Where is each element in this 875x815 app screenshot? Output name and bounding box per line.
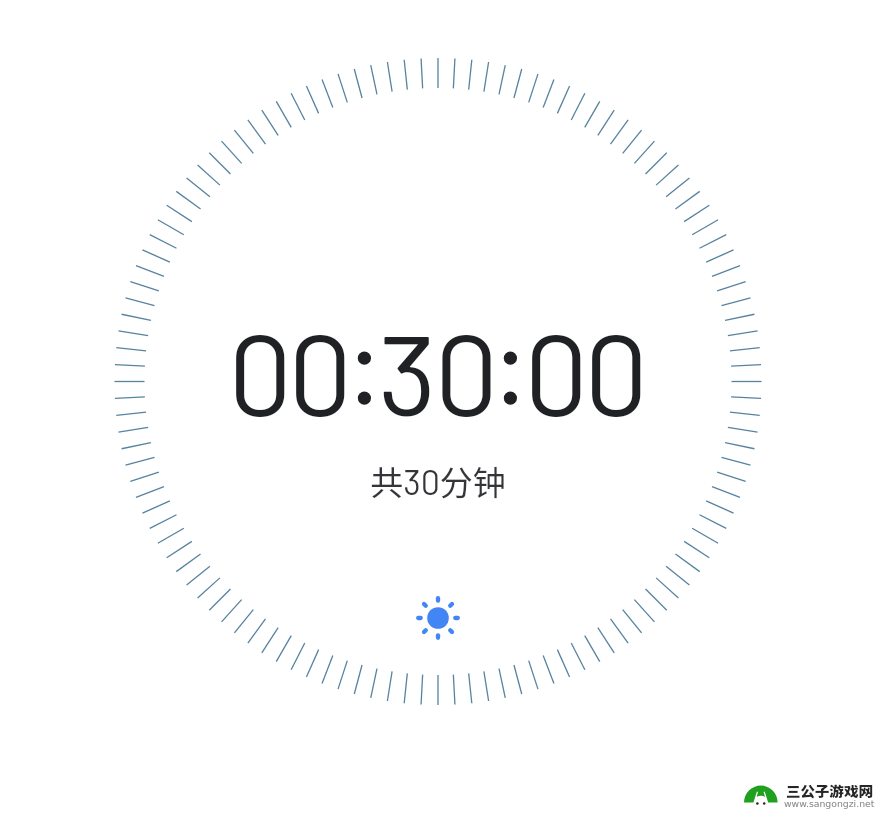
button[interactable]: 共30分钟 — [352, 457, 524, 499]
button[interactable]: Timer dial, 30 minutes — [114, 58, 762, 706]
staticText: 共30分钟 — [352, 457, 524, 499]
button[interactable]: Edit duration 00:30:00 — [230, 330, 646, 422]
button[interactable]: Brightness — [408, 588, 468, 648]
staticText: 00 — [228, 302, 349, 439]
staticText: 00 — [524, 302, 645, 439]
staticText: www.sangongzi.net — [784, 798, 875, 809]
staticText: 三公子游戏网 — [786, 780, 873, 801]
staticText: 30 — [378, 302, 497, 439]
